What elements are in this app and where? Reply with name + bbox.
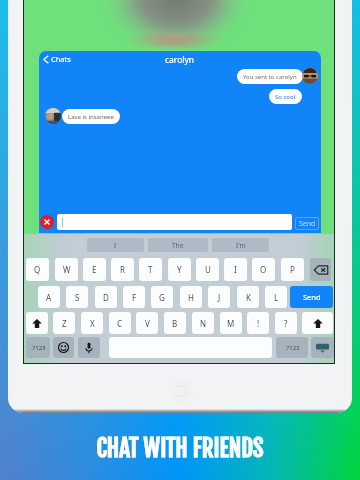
button[interactable]: Backspace — [310, 258, 331, 281]
staticText: G — [159, 292, 165, 303]
button[interactable]: I — [224, 258, 247, 281]
staticText: F — [132, 292, 137, 303]
button[interactable]: E — [83, 258, 106, 281]
button[interactable]: Emoji — [53, 337, 74, 358]
button[interactable]: V — [136, 312, 158, 334]
button[interactable]: You sent to carolyn — [237, 69, 303, 84]
staticText: O — [260, 264, 267, 275]
staticText: S — [75, 292, 80, 303]
button[interactable] — [57, 214, 292, 230]
button[interactable]: X — [81, 312, 103, 334]
staticText: C — [117, 318, 123, 329]
staticText: The — [172, 241, 184, 250]
button[interactable]: G — [151, 286, 173, 308]
button[interactable]: Q — [26, 258, 49, 281]
staticText: I'm — [236, 241, 246, 250]
staticText: K — [246, 292, 251, 303]
staticText: U — [205, 264, 211, 275]
staticText: P — [290, 264, 295, 275]
button[interactable]: Lava is insaneee — [62, 109, 120, 124]
staticText: R — [120, 264, 125, 275]
staticText: So cool — [275, 93, 296, 101]
staticText: T — [148, 264, 153, 275]
button[interactable]: I — [87, 238, 144, 252]
staticText: I — [234, 264, 237, 275]
button[interactable]: Send — [295, 217, 319, 230]
button[interactable]: D — [95, 286, 117, 308]
button[interactable]: R — [111, 258, 134, 281]
button[interactable]: Numbers — [26, 337, 50, 358]
staticText: Y — [177, 264, 182, 275]
button[interactable]: H — [180, 286, 202, 308]
button[interactable]: Shift — [26, 312, 48, 334]
button[interactable]: B — [164, 312, 186, 334]
staticText: M — [227, 318, 235, 329]
button[interactable]: Y — [168, 258, 191, 281]
staticText: Send — [303, 292, 321, 302]
button[interactable]: L — [265, 286, 287, 308]
button[interactable]: A — [38, 286, 60, 308]
staticText: L — [274, 292, 279, 303]
staticText: W — [63, 264, 71, 275]
button[interactable]: K — [237, 286, 259, 308]
staticText: J — [218, 292, 221, 303]
button[interactable]: F — [123, 286, 145, 308]
button[interactable]: C — [109, 312, 131, 334]
staticText: Z — [62, 318, 67, 329]
staticText: Lava is insaneee — [68, 113, 114, 121]
button[interactable]: O — [252, 258, 275, 281]
staticText: V — [145, 318, 150, 329]
button[interactable]: J — [208, 286, 230, 308]
button[interactable]: I'm — [212, 238, 269, 252]
staticText: ? — [284, 318, 288, 329]
staticText: carolyn — [165, 54, 195, 66]
staticText: A — [46, 292, 52, 303]
button[interactable]: Numbers — [276, 337, 308, 358]
staticText: CHAT WITH FRIENDS — [96, 434, 264, 463]
staticText: .?123 — [31, 344, 46, 352]
button[interactable]: Send — [290, 286, 333, 308]
button[interactable]: Cancel — [40, 215, 54, 229]
staticText: H — [188, 292, 194, 303]
button[interactable]: T — [139, 258, 162, 281]
staticText: B — [172, 318, 178, 329]
button[interactable]: Shift — [302, 312, 333, 334]
button[interactable]: Chats — [43, 54, 71, 64]
button[interactable]: ! — [247, 312, 269, 334]
button[interactable]: ? — [275, 312, 297, 334]
button[interactable]: N — [192, 312, 214, 334]
button[interactable]: Dictate — [78, 337, 100, 358]
button[interactable]: U — [196, 258, 219, 281]
staticText: Send — [299, 219, 316, 229]
button[interactable]: Hide keyboard — [311, 337, 334, 358]
button[interactable]: P — [281, 258, 304, 281]
button[interactable]: M — [220, 312, 242, 334]
staticText: E — [92, 264, 97, 275]
staticText: .?123 — [285, 344, 300, 352]
staticText: Q — [34, 264, 41, 275]
staticText: N — [200, 318, 207, 329]
button[interactable]: W — [55, 258, 78, 281]
button[interactable]: So cool — [269, 89, 302, 104]
staticText: D — [103, 292, 109, 303]
staticText: X — [90, 318, 95, 329]
button[interactable]: Z — [53, 312, 75, 334]
staticText: I — [114, 241, 117, 250]
staticText: You sent to carolyn — [243, 73, 297, 81]
button[interactable]: The — [148, 238, 208, 252]
button[interactable]: S — [66, 286, 88, 308]
staticText: Chats — [51, 54, 71, 64]
staticText: ! — [257, 318, 260, 329]
